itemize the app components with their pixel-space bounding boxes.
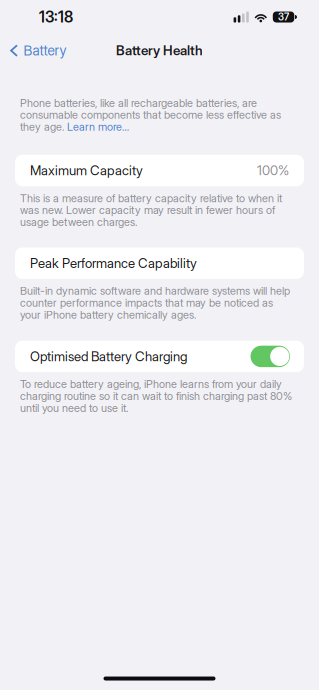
staticText: This is a measure of battery capacity re…	[20, 192, 282, 228]
button[interactable]: Phone batteries, like all rechargeable b…	[0, 97, 293, 133]
staticText: 13:18	[39, 8, 73, 26]
staticText: Maximum Capacity	[30, 162, 143, 178]
button[interactable]: Optimised Battery Charging	[15, 341, 304, 372]
staticText: 37	[278, 11, 289, 23]
button[interactable]: Battery	[0, 36, 66, 65]
button[interactable]: Peak Performance Capability	[15, 247, 304, 279]
staticText: Phone batteries, like all rechargeable b…	[20, 97, 281, 133]
staticText: Battery Health	[116, 42, 203, 58]
button[interactable]: Maximum Capacity	[15, 155, 304, 186]
staticText: Peak Performance Capability	[30, 255, 197, 271]
staticText: To reduce battery ageing, iPhone learns …	[20, 378, 292, 414]
staticText: Optimised Battery Charging	[30, 348, 187, 364]
staticText: 100%	[257, 162, 289, 178]
button[interactable]: Optimised Battery Charging	[250, 346, 290, 367]
staticText: Battery	[23, 42, 66, 59]
staticText: Built-in dynamic software and hardware s…	[20, 285, 290, 321]
